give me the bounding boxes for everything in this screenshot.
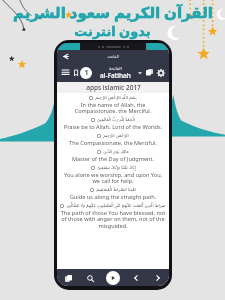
button[interactable]: 1: [80, 67, 92, 79]
staticText: The Compassionate, the Merciful.: [60, 139, 166, 147]
staticText: بِسْمِ اللَّهِ الرَّحْمَٰنِ الرَّحِيمِ: [95, 95, 137, 101]
staticText: الْحَمْدُ لِلَّهِ رَبِّ الْعَالَمِينَ: [97, 117, 135, 123]
staticText: In the name of Allah, the Compassionate,…: [60, 101, 166, 115]
staticText: You alone we worship, and upon You, we c…: [60, 171, 166, 185]
button[interactable]: Back: [61, 52, 70, 61]
button[interactable]: Bookmarks: [71, 68, 80, 77]
staticText: al-Fatihah: [100, 71, 131, 80]
button[interactable]: الرَّحْمَٰنِ الرَّحِيمِ: [57, 133, 169, 147]
button[interactable]: الفاتحة: [94, 66, 136, 80]
staticText: 1: [84, 68, 89, 78]
button[interactable]: الْحَمْدُ لِلَّهِ رَبِّ الْعَالَمِينَ: [57, 117, 169, 131]
staticText: The path of those You have blessed, not …: [60, 209, 166, 230]
staticText: apps islamic 2017: [86, 83, 141, 92]
button[interactable]: مَالِكِ يَوْمِ الدِّينِ: [57, 149, 169, 163]
staticText: Master of the Day of Judgment.: [60, 155, 166, 163]
button[interactable]: Previous: [130, 272, 142, 284]
staticText: بدون انترنت: [74, 22, 151, 40]
button[interactable]: Copy: [62, 272, 74, 284]
button[interactable]: اهْدِنَا الصِّرَاطَ الْمُسْتَقِيمَ: [57, 187, 169, 201]
button[interactable]: صِرَاطَ الَّذِينَ أَنْعَمْتَ عَلَيْهِمْ …: [57, 203, 169, 230]
staticText: صِرَاطَ الَّذِينَ أَنْعَمْتَ عَلَيْهِمْ …: [66, 203, 166, 209]
staticText: الفاتحة: [107, 54, 119, 59]
staticText: القرآن الكريم سعود الشريم: [13, 2, 213, 22]
button[interactable]: Next: [152, 272, 164, 284]
staticText: Guide us along the straight path.: [60, 193, 166, 201]
staticText: الفاتحة: [109, 66, 122, 71]
staticText: الرَّحْمَٰنِ الرَّحِيمِ: [103, 133, 129, 139]
button[interactable]: Page view: [144, 67, 155, 78]
staticText: مَالِكِ يَوْمِ الدِّينِ: [103, 149, 129, 155]
staticText: إِيَّاكَ نَعْبُدُ وَإِيَّاكَ نَسْتَعِينُ: [97, 165, 136, 171]
button[interactable]: Select surah: [136, 69, 144, 77]
staticText: Praise be to Allah, Lord of the Worlds.: [60, 123, 166, 131]
button[interactable]: Settings: [155, 67, 166, 78]
button[interactable]: Menu: [60, 67, 71, 78]
button[interactable]: Play: [106, 271, 120, 285]
staticText: اهْدِنَا الصِّرَاطَ الْمُسْتَقِيمَ: [96, 187, 136, 193]
button[interactable]: Search: [84, 272, 96, 284]
button[interactable]: بِسْمِ اللَّهِ الرَّحْمَٰنِ الرَّحِيمِ: [57, 95, 169, 115]
button[interactable]: إِيَّاكَ نَعْبُدُ وَإِيَّاكَ نَسْتَعِينُ: [57, 165, 169, 185]
